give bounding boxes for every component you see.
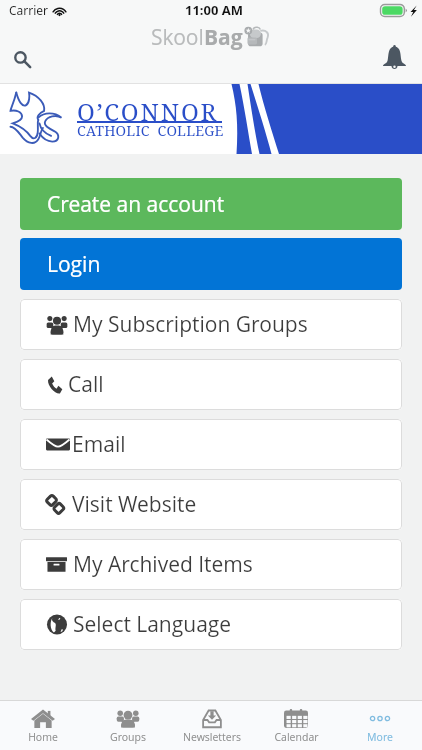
button[interactable]: Visit Website	[20, 479, 402, 530]
staticText: Select Language	[73, 610, 232, 639]
staticText: Groups	[110, 730, 146, 744]
staticText: My Subscription Groups	[73, 310, 308, 339]
staticText: Call	[68, 370, 104, 399]
staticText: My Archived Items	[73, 550, 253, 579]
staticText: Newsletters	[183, 730, 241, 744]
staticText: Skool	[151, 23, 204, 52]
staticText: More	[367, 730, 393, 744]
staticText: Calendar	[274, 730, 319, 744]
button[interactable]: My Subscription Groups	[20, 299, 402, 350]
staticText: O’CONNOR	[77, 95, 219, 128]
staticText: Carrier	[9, 2, 49, 18]
staticText: Home	[28, 730, 58, 744]
button[interactable]: Calendar	[254, 701, 338, 750]
button[interactable]: Email	[20, 419, 402, 470]
staticText: Create an account	[47, 190, 225, 219]
button[interactable]: Search	[2, 40, 44, 80]
staticText: Login	[47, 250, 101, 279]
staticText: CATHOLIC COLLEGE	[77, 121, 224, 140]
staticText: Email	[72, 430, 126, 459]
button[interactable]: Groups	[85, 701, 170, 750]
button[interactable]: Create an account	[20, 178, 402, 230]
button[interactable]: Notifications	[375, 37, 417, 77]
button[interactable]: More	[338, 701, 422, 750]
button[interactable]: Select Language	[20, 599, 402, 650]
button[interactable]: Call	[20, 359, 402, 410]
button[interactable]: Newsletters	[170, 701, 254, 750]
button[interactable]: Login	[20, 238, 402, 290]
button[interactable]: Home	[0, 701, 85, 750]
button[interactable]: My Archived Items	[20, 539, 402, 590]
staticText: Visit Website	[72, 490, 197, 519]
staticText: Bag	[204, 23, 243, 52]
staticText: 11:00 AM	[185, 1, 244, 19]
